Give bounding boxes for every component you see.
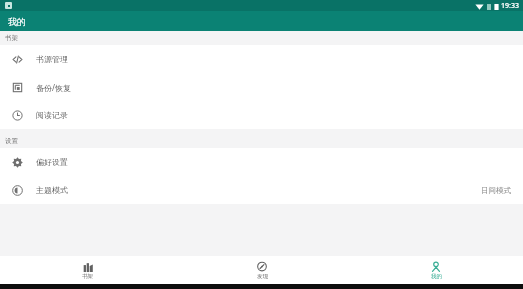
staticText: 主题模式 bbox=[36, 185, 68, 195]
staticText: 我的 bbox=[431, 273, 442, 280]
staticText: 阅读记录 bbox=[36, 110, 68, 120]
staticText: 我的 bbox=[8, 16, 26, 27]
button[interactable]: 我的 bbox=[349, 256, 523, 284]
button[interactable]: 发现 bbox=[175, 256, 349, 284]
button[interactable]: 书源管理 bbox=[0, 45, 523, 73]
button[interactable]: 偏好设置 bbox=[0, 148, 523, 176]
staticText: 备份/恢复 bbox=[36, 82, 71, 93]
staticText: 偏好设置 bbox=[36, 157, 68, 167]
staticText: 书架 bbox=[5, 34, 18, 42]
button[interactable]: 书架 bbox=[0, 256, 175, 284]
button[interactable]: 阅读记录 bbox=[0, 101, 523, 129]
button[interactable]: 主题模式 bbox=[0, 176, 523, 204]
staticText: 书架 bbox=[82, 273, 93, 280]
staticText: 19:33 bbox=[501, 1, 519, 11]
staticText: 设置 bbox=[5, 137, 18, 145]
staticText: 书源管理 bbox=[36, 54, 68, 64]
button[interactable]: 备份/恢复 bbox=[0, 73, 523, 101]
staticText: 发现 bbox=[257, 273, 268, 280]
staticText: 日间模式 bbox=[481, 186, 511, 195]
